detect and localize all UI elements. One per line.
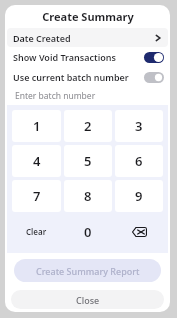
- button[interactable]: 8: [64, 180, 112, 212]
- staticText: Create Summary: [42, 9, 134, 24]
- staticText: 1: [33, 117, 41, 135]
- button[interactable]: Enter batch number: [5, 87, 170, 105]
- staticText: 8: [84, 187, 92, 205]
- button[interactable]: Date Created: [7, 28, 168, 47]
- staticText: 7: [33, 187, 41, 205]
- button[interactable]: Create Summary Report: [14, 259, 161, 282]
- staticText: 5: [84, 152, 92, 170]
- staticText: Enter batch number: [15, 90, 96, 102]
- button[interactable]: 3: [115, 110, 163, 142]
- button[interactable]: 6: [115, 145, 163, 177]
- staticText: 2: [84, 117, 92, 135]
- button[interactable]: 1: [12, 110, 61, 142]
- staticText: 0: [84, 223, 92, 241]
- staticText: 6: [135, 152, 143, 170]
- button[interactable]: Close: [11, 290, 164, 309]
- staticText: 9: [135, 187, 143, 205]
- button[interactable]: 0: [64, 215, 112, 248]
- button[interactable]: 9: [115, 180, 163, 212]
- button[interactable]: Use current batch number: [5, 67, 170, 87]
- staticText: Create Summary Report: [36, 265, 140, 277]
- button[interactable]: Clear: [12, 215, 61, 248]
- button[interactable]: 2: [64, 110, 112, 142]
- staticText: Use current batch number: [13, 71, 129, 83]
- staticText: Date Created: [13, 32, 71, 44]
- button[interactable]: Show Void Transactions: [5, 47, 170, 67]
- button[interactable]: 7: [12, 180, 61, 212]
- staticText: Close: [76, 294, 100, 306]
- button[interactable]: Backspace: [115, 215, 163, 248]
- button[interactable]: 4: [12, 145, 61, 177]
- staticText: Show Void Transactions: [13, 51, 117, 63]
- staticText: Clear: [26, 226, 47, 237]
- button[interactable]: 5: [64, 145, 112, 177]
- staticText: 4: [33, 152, 41, 170]
- other: Disabled: [144, 72, 164, 83]
- staticText: 3: [135, 117, 143, 135]
- other: Enabled: [144, 52, 164, 63]
